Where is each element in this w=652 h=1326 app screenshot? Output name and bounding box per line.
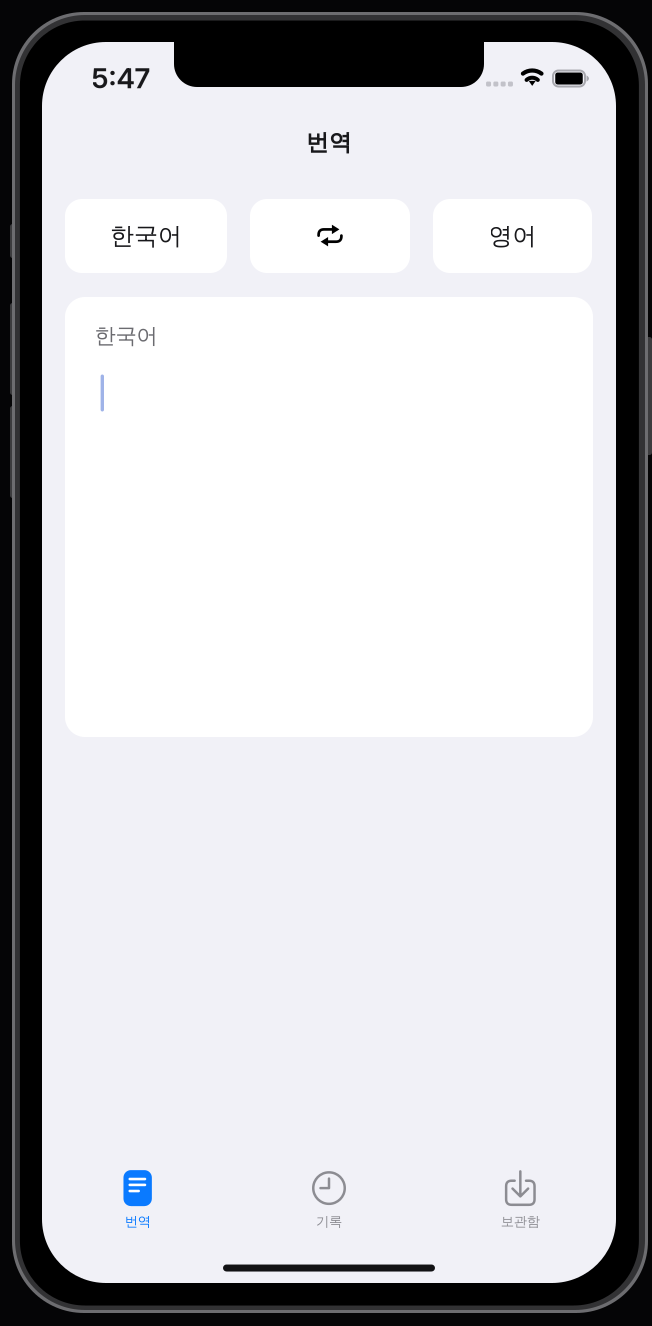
button[interactable]: 한국어 (65, 199, 227, 273)
staticText: 번역 (125, 1213, 151, 1230)
staticText: 한국어 (110, 221, 182, 251)
button[interactable]: 영어 (433, 199, 592, 273)
button[interactable]: 번역 (42, 1170, 233, 1230)
staticText: 번역 (306, 128, 352, 157)
button[interactable]: 한국어 (65, 297, 593, 737)
button[interactable]: Swap languages (250, 199, 410, 273)
staticText: 영어 (488, 221, 536, 251)
staticText: 기록 (316, 1213, 342, 1230)
button[interactable]: 기록 (233, 1170, 425, 1230)
staticText: 5:47 (91, 61, 150, 95)
staticText: 한국어 (94, 323, 157, 349)
button[interactable]: 보관함 (425, 1170, 616, 1230)
staticText: 보관함 (501, 1213, 540, 1230)
